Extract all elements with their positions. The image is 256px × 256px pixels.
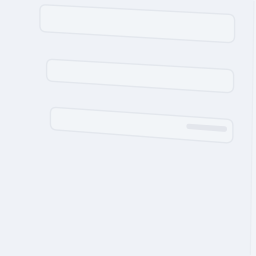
button[interactable]: Row one: [40, 5, 235, 42]
button[interactable]: Row two: [47, 59, 234, 92]
button[interactable]: Row three: [51, 108, 234, 141]
